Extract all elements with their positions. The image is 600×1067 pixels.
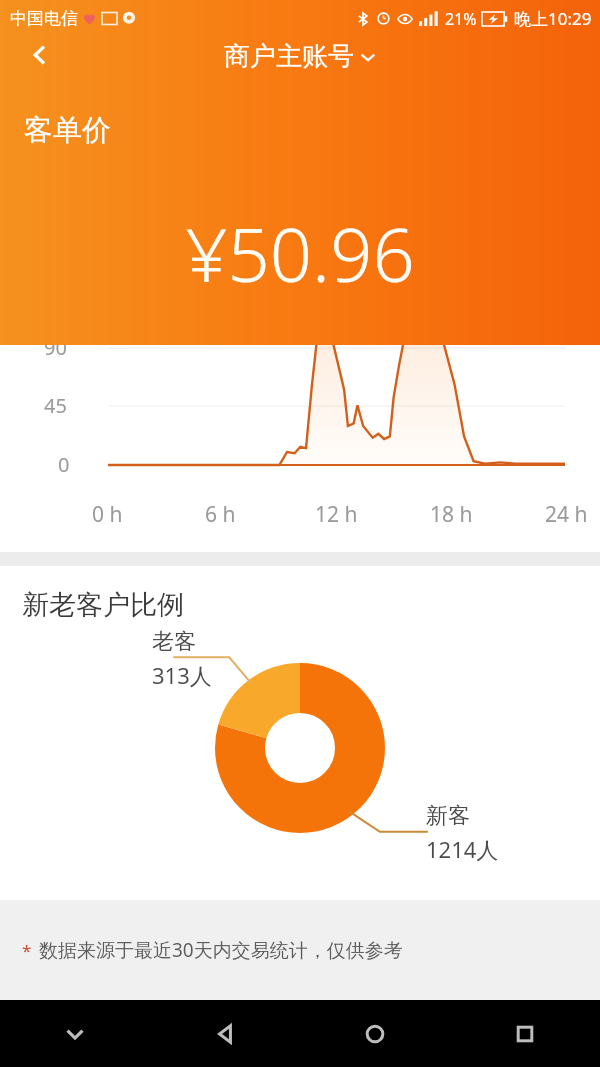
button[interactable]: Home [300, 1000, 450, 1067]
staticText: 1214人 [426, 834, 499, 864]
staticText: 新客 [426, 802, 470, 830]
staticText: 18 h [430, 500, 473, 529]
staticText: 90 [44, 334, 67, 361]
staticText: 12 h [315, 500, 358, 529]
staticText: 21% [445, 8, 477, 30]
staticText: 0 h [92, 500, 123, 529]
staticText: 客单价 [24, 112, 111, 149]
staticText: 313人 [152, 660, 212, 690]
button[interactable]: Back [12, 37, 68, 73]
staticText: 45 [44, 392, 67, 419]
button[interactable]: Recents [450, 1000, 600, 1067]
staticText: 老客 [152, 628, 196, 656]
staticText: 6 h [205, 500, 236, 529]
button[interactable]: Back [150, 1000, 300, 1067]
staticText: 商户主账号 [224, 40, 354, 73]
staticText: 新老客户比例 [22, 588, 184, 622]
staticText: 中国电信 [10, 8, 78, 29]
staticText: * [22, 939, 32, 962]
staticText: ¥50.96 [0, 203, 600, 304]
staticText: 晚上10:29 [514, 7, 592, 30]
button[interactable]: 商户主账号 [224, 40, 376, 73]
staticText: 数据来源于最近30天内交易统计，仅供参考 [39, 937, 403, 963]
button[interactable]: Hide keyboard [0, 1000, 150, 1067]
staticText: 0 [58, 451, 70, 478]
staticText: 24 h [545, 500, 588, 529]
